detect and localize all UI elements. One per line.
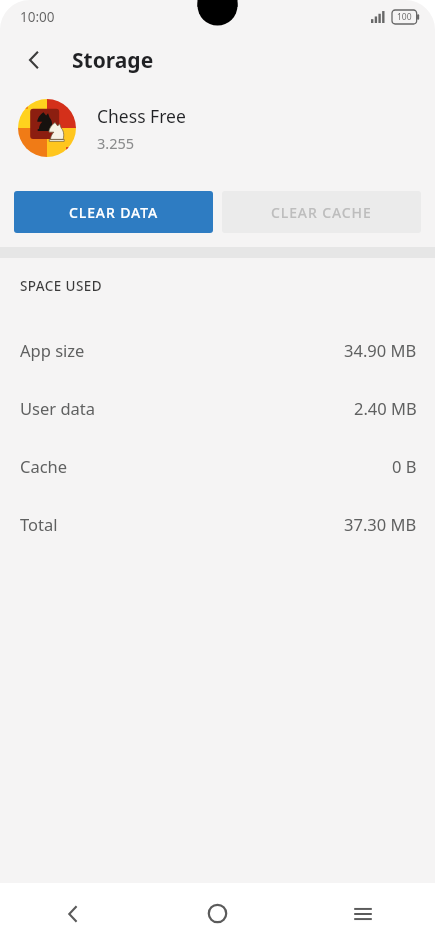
staticText: 37.30 MB: [344, 513, 417, 535]
staticText: Storage: [72, 46, 154, 75]
button[interactable]: Back: [0, 883, 145, 944]
button[interactable]: User data: [0, 379, 435, 437]
staticText: CLEAR CACHE: [271, 203, 372, 222]
staticText: Chess Free: [97, 104, 186, 128]
staticText: 10:00: [20, 8, 55, 26]
button[interactable]: CLEAR CACHE: [222, 191, 421, 233]
staticText: App size: [20, 339, 85, 361]
button[interactable]: CLEAR DATA: [14, 191, 213, 233]
staticText: CLEAR DATA: [69, 203, 159, 222]
staticText: SPACE USED: [20, 277, 102, 295]
staticText: 2.40 MB: [354, 397, 417, 419]
staticText: 100: [397, 11, 412, 23]
button[interactable]: Cache: [0, 437, 435, 495]
staticText: 34.90 MB: [344, 339, 417, 361]
button[interactable]: Back: [14, 40, 54, 80]
button[interactable]: App size: [0, 321, 435, 379]
staticText: Cache: [20, 455, 68, 477]
button[interactable]: Recent apps: [290, 883, 435, 944]
staticText: 3.255: [97, 133, 135, 153]
staticText: Total: [20, 513, 58, 535]
staticText: User data: [20, 397, 95, 419]
button[interactable]: Home: [145, 883, 290, 944]
staticText: 0 B: [392, 455, 417, 477]
button[interactable]: Total: [0, 495, 435, 553]
